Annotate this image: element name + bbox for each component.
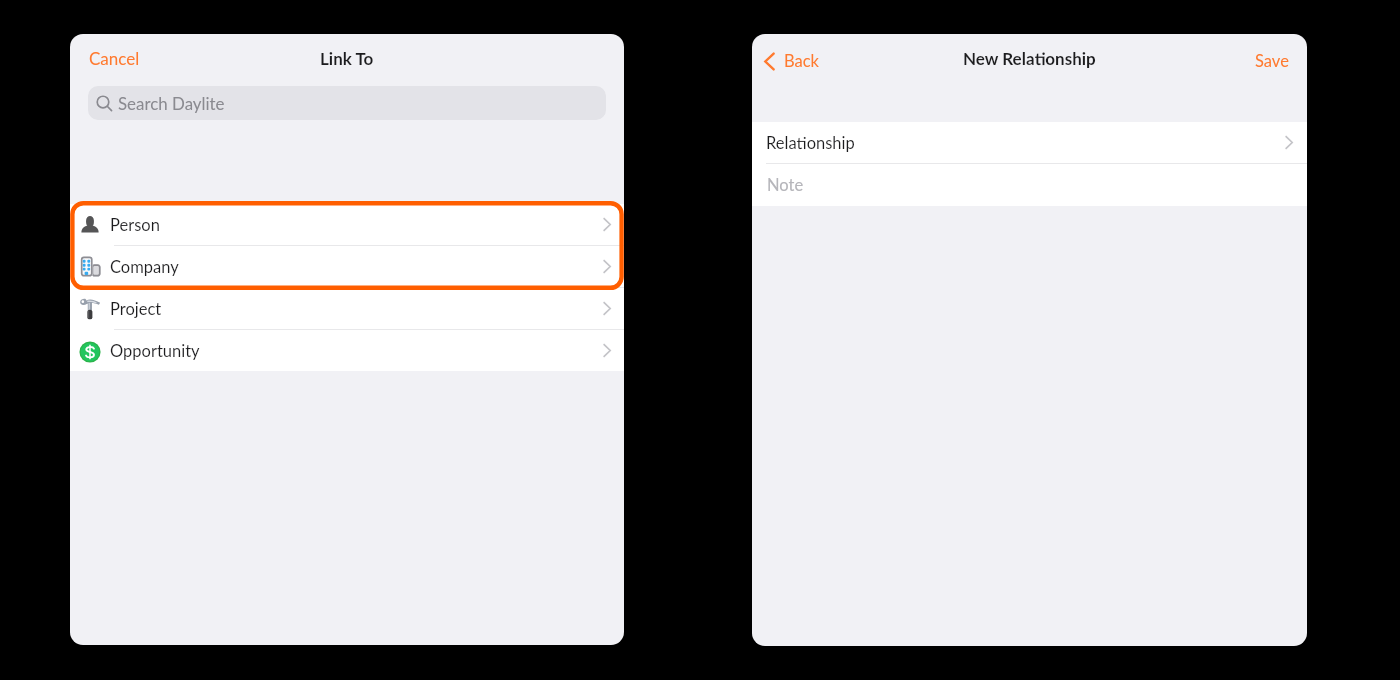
- button[interactable]: Cancel: [81, 42, 148, 74]
- staticText: Save: [1255, 51, 1289, 71]
- button[interactable]: Company: [70, 246, 624, 287]
- staticText: Cancel: [89, 48, 140, 68]
- staticText: Opportunity: [110, 341, 200, 361]
- button[interactable]: Search Daylite: [88, 86, 606, 120]
- button[interactable]: Relationship: [752, 122, 1307, 163]
- staticText: Search Daylite: [118, 93, 225, 113]
- staticText: Person: [110, 215, 160, 235]
- button[interactable]: Note: [752, 164, 1307, 206]
- button[interactable]: Back: [758, 45, 825, 77]
- staticText: Back: [784, 51, 819, 71]
- button[interactable]: Project: [70, 288, 624, 329]
- button[interactable]: Opportunity: [70, 330, 624, 371]
- staticText: Company: [110, 257, 179, 277]
- staticText: Project: [110, 299, 162, 319]
- staticText: Link To: [320, 48, 374, 68]
- other: Back: [764, 52, 775, 71]
- staticText: Relationship: [766, 133, 855, 153]
- staticText: New Relationship: [963, 48, 1096, 68]
- button[interactable]: Save: [1249, 45, 1295, 77]
- button[interactable]: Person: [70, 204, 624, 245]
- staticText: Note: [767, 175, 804, 195]
